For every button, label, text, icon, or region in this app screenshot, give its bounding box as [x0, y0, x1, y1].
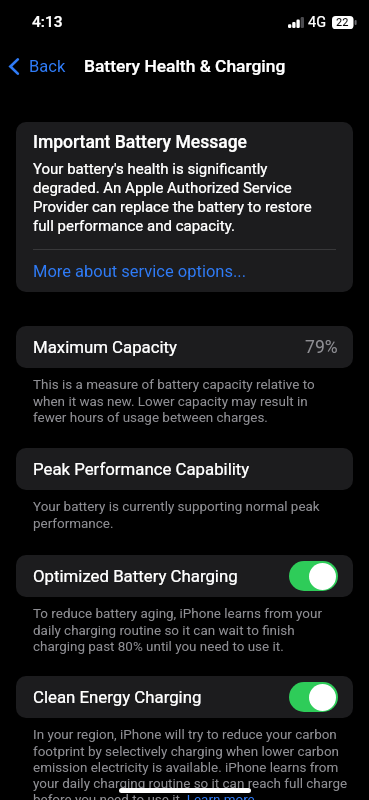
button[interactable]: Maximum Capacity — [16, 326, 353, 368]
staticText: To reduce battery aging, iPhone learns f… — [33, 606, 322, 654]
staticText: Your battery is currently supporting nor… — [33, 499, 320, 531]
button[interactable]: Back — [9, 57, 66, 76]
staticText: Important Battery Message — [33, 132, 247, 153]
button[interactable]: Toggle Clean Energy Charging — [289, 682, 338, 712]
button[interactable]: Clean Energy Charging — [16, 676, 353, 718]
staticText: Your battery's health is significantly d… — [33, 160, 336, 235]
button[interactable]: More about service options... — [33, 250, 336, 292]
staticText: Back — [29, 57, 66, 76]
button[interactable]: Optimized Battery Charging — [16, 555, 353, 597]
staticText: More about service options... — [33, 262, 246, 281]
button[interactable]: Toggle Optimized Battery Charging — [289, 561, 338, 591]
staticText: Battery Health & Charging — [84, 56, 286, 76]
staticText: 22 — [336, 16, 349, 29]
staticText: This is a measure of battery capacity re… — [33, 377, 315, 425]
staticText: 4G — [308, 14, 327, 31]
staticText: In your region, iPhone will try to reduc… — [33, 727, 348, 800]
staticText: 4:13 — [32, 13, 63, 31]
staticText: Maximum Capacity — [33, 337, 305, 357]
staticText: Optimized Battery Charging — [33, 566, 289, 586]
staticText: Clean Energy Charging — [33, 687, 289, 707]
staticText: 79% — [305, 337, 338, 358]
staticText: Peak Performance Capability — [33, 459, 338, 479]
button[interactable]: Peak Performance Capability — [16, 448, 353, 490]
